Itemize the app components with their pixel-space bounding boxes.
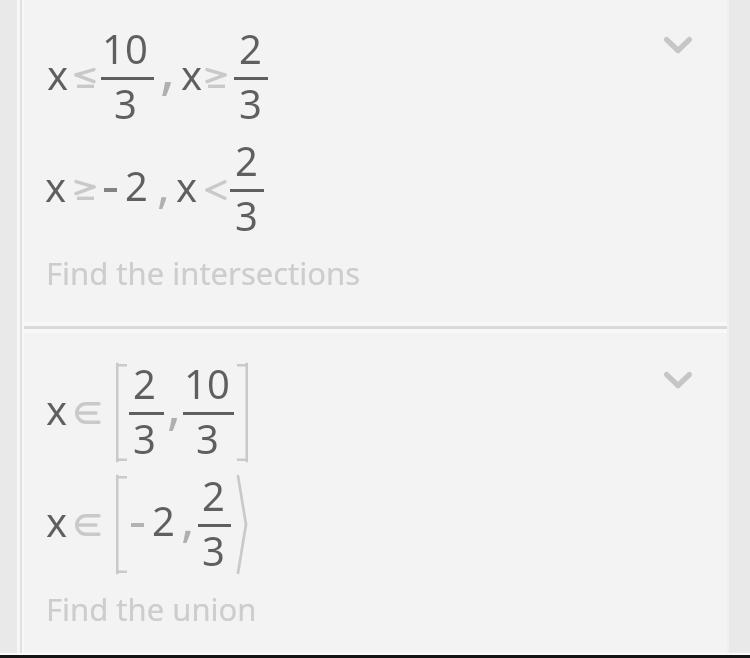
button[interactable]: Step: Find the union <box>17 333 729 658</box>
staticText: 3 <box>133 411 156 465</box>
staticText: 10 <box>184 356 230 410</box>
staticText: , <box>157 152 170 217</box>
staticText: Find the intersections <box>46 252 361 294</box>
staticText: 2 <box>125 158 148 212</box>
staticText: 3 <box>202 523 225 577</box>
button[interactable]: Step: Find the intersections <box>17 0 729 326</box>
staticText: x <box>181 47 203 101</box>
staticText: x <box>45 159 67 213</box>
staticText: , <box>160 29 176 105</box>
staticText: 3 <box>239 76 262 130</box>
staticText: 2 <box>152 493 175 547</box>
button[interactable]: Expand step <box>650 352 706 408</box>
staticText: 3 <box>196 411 219 465</box>
staticText: Find the union <box>46 588 257 630</box>
staticText: 2 <box>202 468 225 522</box>
staticText: x <box>47 47 69 101</box>
staticText: 2 <box>133 356 156 410</box>
staticText: 2 <box>239 21 262 75</box>
staticText: x <box>46 494 68 548</box>
staticText: x <box>46 382 68 436</box>
staticText: x <box>176 159 198 213</box>
button[interactable]: Expand step <box>650 17 706 73</box>
staticText: 3 <box>114 76 137 130</box>
staticText: 2 <box>235 133 258 187</box>
staticText: 3 <box>235 188 258 242</box>
staticText: 10 <box>102 21 148 75</box>
staticText: , <box>167 368 181 439</box>
staticText: , <box>181 484 195 552</box>
